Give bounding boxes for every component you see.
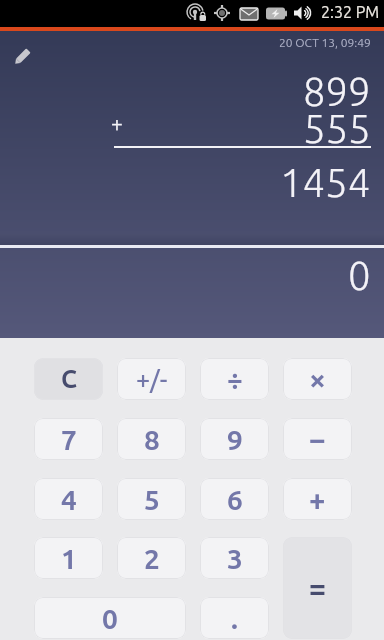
staticText: + (111, 111, 123, 135)
staticText: 5 (144, 484, 160, 515)
staticText: . (231, 603, 238, 634)
button[interactable]: × (283, 358, 352, 400)
staticText: 3 (227, 543, 243, 574)
button[interactable]: + (283, 478, 352, 520)
button[interactable]: = (283, 537, 352, 639)
button[interactable]: +/- (117, 358, 186, 400)
staticText: 555 (303, 106, 371, 151)
staticText: 2 (144, 543, 160, 574)
staticText: × (309, 362, 326, 396)
staticText: ÷ (227, 364, 243, 395)
button[interactable]: 5 (117, 478, 186, 520)
staticText: 899 (303, 69, 371, 114)
button[interactable]: 9 (200, 418, 269, 460)
button[interactable]: 7 (34, 418, 103, 460)
staticText: + (309, 483, 326, 516)
button[interactable]: ÷ (200, 358, 269, 400)
button[interactable]: 2 (117, 537, 186, 579)
button[interactable] (10, 41, 38, 69)
button[interactable]: 6 (200, 478, 269, 520)
staticText: 6 (227, 484, 243, 515)
staticText: 0 (102, 603, 118, 634)
button[interactable]: 3 (200, 537, 269, 579)
staticText: 9 (227, 424, 243, 455)
button[interactable]: 0 (34, 597, 186, 639)
staticText: 1454 (280, 160, 371, 205)
button[interactable]: . (200, 597, 269, 639)
staticText: − (309, 422, 326, 456)
staticText: 7 (61, 424, 77, 455)
button[interactable]: − (283, 418, 352, 460)
staticText: 1 (61, 543, 77, 574)
staticText: +/- (136, 365, 168, 393)
staticText: 8 (144, 424, 160, 455)
staticText: 4 (61, 484, 77, 515)
staticText: = (309, 571, 326, 605)
staticText: 20 OCT 13, 09:49 (279, 36, 371, 49)
staticText: C (61, 365, 77, 393)
button[interactable]: 8 (117, 418, 186, 460)
staticText: 0 (348, 253, 371, 298)
button[interactable]: 1 (34, 537, 103, 579)
staticText: 2:32 PM (321, 3, 380, 21)
button[interactable]: C (34, 358, 103, 400)
button[interactable]: 4 (34, 478, 103, 520)
